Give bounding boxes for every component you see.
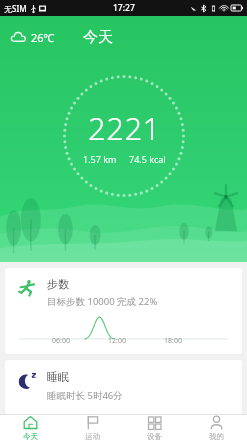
staticText: 74.5 kcal: [129, 153, 166, 165]
button[interactable]: 设备: [123, 415, 185, 440]
staticText: 17:27: [113, 2, 135, 14]
staticText: 2221: [88, 107, 161, 149]
staticText: 运动: [85, 432, 100, 440]
staticText: 06:00: [52, 336, 70, 346]
staticText: 今天: [23, 432, 38, 440]
staticText: 26℃: [31, 30, 55, 45]
staticText: 目标步数 10000 完成 22%: [47, 295, 158, 308]
button[interactable]: 今天: [0, 415, 61, 440]
button[interactable]: 运动: [61, 415, 123, 440]
staticText: 今天: [83, 28, 113, 47]
staticText: 睡眠时长 5时46分: [47, 389, 123, 402]
button[interactable]: Steps today 2221: [62, 74, 186, 198]
button[interactable]: Weather 26 degrees: [8, 25, 57, 50]
staticText: 睡眠: [47, 370, 69, 384]
staticText: 18:00: [164, 336, 182, 346]
staticText: 1.57 km: [83, 153, 117, 165]
button[interactable]: 我的: [185, 415, 247, 440]
staticText: 无SIM: [4, 3, 27, 14]
staticText: 设备: [147, 432, 162, 440]
staticText: 我的: [209, 432, 224, 440]
staticText: 12:00: [108, 336, 126, 346]
button[interactable]: 睡眠: [5, 360, 242, 414]
button[interactable]: 步数: [5, 268, 242, 354]
staticText: 步数: [47, 277, 69, 291]
